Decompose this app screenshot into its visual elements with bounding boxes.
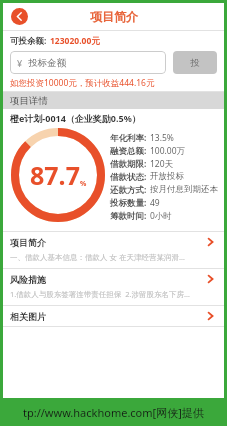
- button[interactable]: 风险措施: [3, 269, 224, 306]
- staticText: 项目简介: [10, 237, 203, 248]
- staticText: 一、借款人基本信息：借款人 女 在天津经营某润滑…: [10, 252, 217, 262]
- staticText: 120天: [150, 158, 174, 170]
- staticText: 投标数量:: [110, 197, 147, 209]
- staticText: 1.借款人与股东签署连带责任担保 2.涉留股东名下房…: [10, 289, 217, 299]
- staticText: 投: [190, 57, 200, 69]
- staticText: 13.5%: [150, 132, 174, 144]
- staticText: 投标金额: [28, 57, 66, 69]
- staticText: 还款方式:: [110, 184, 147, 196]
- staticText: ¥: [17, 57, 23, 69]
- staticText: 融资总额:: [110, 145, 147, 157]
- staticText: %: [80, 179, 87, 189]
- button[interactable]: ¥: [10, 51, 166, 74]
- staticText: 相关图片: [10, 311, 203, 322]
- staticText: tp://www.hackhome.com[网侠]提供: [23, 405, 204, 420]
- staticText: 项目简介: [90, 9, 138, 24]
- staticText: 年化利率:: [110, 132, 147, 144]
- staticText: 100.00万: [150, 145, 186, 157]
- staticText: 橙e计划-0014（企业奖励0.5%）: [10, 112, 141, 124]
- staticText: 筹款时间:: [110, 210, 147, 222]
- staticText: 87.7: [30, 158, 80, 192]
- staticText: 49: [150, 197, 160, 209]
- button[interactable]: 相关图片: [3, 306, 224, 327]
- staticText: 风险措施: [10, 274, 203, 285]
- button[interactable]: 项目简介: [3, 232, 224, 269]
- staticText: 0小时: [150, 210, 172, 222]
- staticText: 开放投标: [150, 171, 184, 182]
- staticText: 如您投资10000元，预计收益444.16元: [10, 77, 155, 89]
- button[interactable]: 投: [173, 51, 217, 74]
- staticText: 项目详情: [10, 95, 48, 107]
- button[interactable]: Back: [11, 8, 28, 25]
- staticText: 可投余额:: [10, 35, 47, 47]
- staticText: 123020.00元: [50, 35, 100, 47]
- staticText: 按月付息到期还本: [150, 184, 218, 195]
- staticText: 借款状态:: [110, 171, 147, 183]
- staticText: 借款期限:: [110, 158, 147, 170]
